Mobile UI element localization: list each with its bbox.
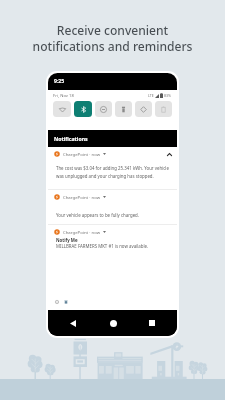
- staticText: ChargePoint · now: [63, 151, 101, 157]
- staticText: Notify Me: [56, 237, 78, 243]
- staticText: Notifications: [54, 135, 88, 142]
- button[interactable]: Do not disturb: [95, 101, 112, 117]
- staticText: 9:25: [54, 78, 65, 85]
- button[interactable]: Recents: [145, 316, 159, 330]
- staticText: Fri, Nov 18: [53, 93, 74, 99]
- button[interactable]: Battery saver: [155, 101, 172, 117]
- staticText: Receive convenient notifications and rem…: [0, 22, 225, 54]
- staticText: The cost was $3.04 for adding 25.341 kWh…: [56, 165, 177, 171]
- button[interactable]: Auto-rotate: [135, 101, 152, 117]
- button[interactable]: Bluetooth: [74, 101, 92, 117]
- button[interactable]: Clear all: [63, 299, 69, 305]
- staticText: was unplugged and your charging has stop…: [56, 173, 177, 179]
- staticText: Your vehicle appears to be fully charged…: [56, 212, 177, 218]
- button[interactable]: Flashlight: [115, 101, 132, 117]
- button[interactable]: Wi-Fi: [53, 101, 71, 117]
- button[interactable]: ChargePoint · now: [48, 225, 177, 259]
- staticText: ChargePoint · now: [63, 194, 101, 200]
- button[interactable]: Home: [106, 316, 120, 330]
- staticText: LTE: [148, 93, 154, 98]
- staticText: MILLBRAE FARMERS MKT #1 is now available…: [56, 243, 177, 249]
- button[interactable]: Notification settings: [54, 299, 60, 305]
- staticText: 83%: [164, 93, 172, 98]
- button[interactable]: ChargePoint · now: [48, 147, 177, 189]
- staticText: ChargePoint · now: [63, 229, 101, 235]
- button[interactable]: Back: [66, 316, 80, 330]
- button[interactable]: ChargePoint · now: [48, 190, 177, 224]
